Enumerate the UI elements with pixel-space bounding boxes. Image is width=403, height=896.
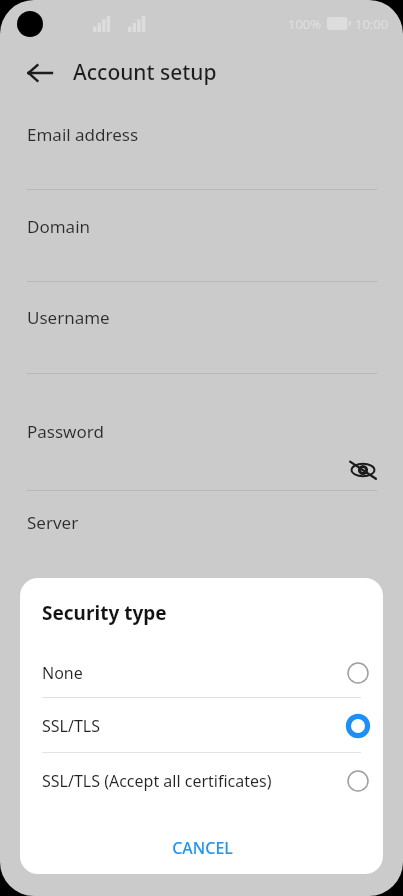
staticText: Security type	[42, 600, 167, 626]
staticText: Account setup	[73, 58, 217, 87]
staticText: CANCEL	[172, 837, 233, 859]
button[interactable]: Server	[0, 497, 403, 557]
staticText: 100%	[288, 15, 322, 33]
button[interactable]: Show password	[341, 450, 385, 490]
staticText: SSL/TLS	[42, 715, 100, 737]
button[interactable]: Back	[16, 53, 64, 93]
staticText: None	[42, 662, 83, 684]
staticText: Domain	[27, 215, 91, 238]
staticText: 10:00	[355, 15, 389, 33]
button[interactable]: None	[20, 647, 383, 698]
button[interactable]: Domain	[0, 201, 403, 281]
staticText: Username	[27, 306, 110, 329]
staticText: Email address	[27, 123, 139, 146]
button[interactable]: SSL/TLS	[20, 699, 383, 752]
button[interactable]: SSL/TLS (Accept all certificates)	[20, 754, 383, 807]
staticText: SSL/TLS (Accept all certificates)	[42, 770, 272, 792]
button[interactable]: CANCEL	[140, 829, 264, 867]
button[interactable]: Email address	[0, 109, 403, 189]
button[interactable]: Username	[0, 292, 403, 373]
button[interactable]: Password	[0, 406, 403, 490]
staticText: Password	[27, 420, 104, 443]
staticText: Server	[27, 511, 79, 534]
